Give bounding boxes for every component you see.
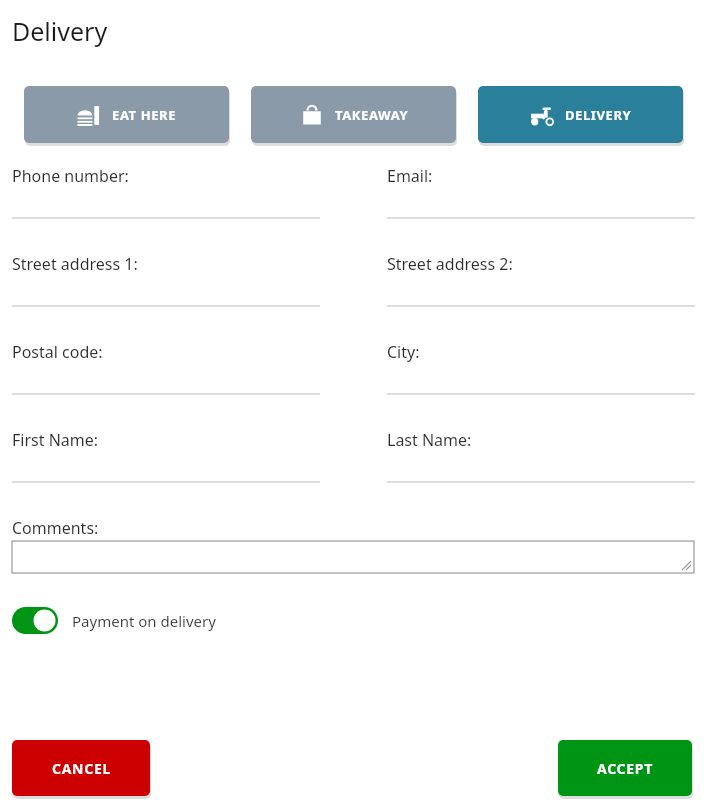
button[interactable]: CANCEL	[12, 740, 150, 796]
staticText: Comments:	[12, 517, 99, 539]
staticText: Street address 1:	[12, 253, 138, 275]
staticText: First Name:	[12, 429, 99, 451]
button[interactable]: Street address 2:	[387, 253, 695, 307]
button[interactable]: City:	[387, 341, 695, 395]
button[interactable]: DELIVERY	[478, 86, 683, 143]
staticText: DELIVERY	[565, 106, 632, 124]
button[interactable]: Payment on delivery toggle	[12, 607, 216, 634]
button[interactable]: EAT HERE	[24, 86, 229, 143]
staticText: Postal code:	[12, 341, 103, 363]
staticText: City:	[387, 341, 420, 363]
button[interactable]: First Name:	[12, 429, 320, 483]
button[interactable]: Last Name:	[387, 429, 695, 483]
button[interactable]	[12, 541, 694, 573]
staticText: Phone number:	[12, 165, 129, 187]
staticText: Street address 2:	[387, 253, 513, 275]
button[interactable]: ACCEPT	[558, 740, 692, 796]
staticText: CANCEL	[52, 759, 111, 778]
staticText: Delivery	[12, 14, 108, 48]
button[interactable]: Phone number:	[12, 165, 320, 219]
staticText: TAKEAWAY	[335, 106, 409, 124]
button[interactable]: Postal code:	[12, 341, 320, 395]
other: Payment on delivery toggle	[12, 607, 58, 634]
button[interactable]: TAKEAWAY	[251, 86, 456, 143]
staticText: ACCEPT	[597, 759, 653, 778]
staticText: Email:	[387, 165, 433, 187]
button[interactable]: Email:	[387, 165, 695, 219]
button[interactable]: Street address 1:	[12, 253, 320, 307]
staticText: EAT HERE	[112, 106, 177, 124]
staticText: Payment on delivery	[72, 611, 216, 631]
staticText: Last Name:	[387, 429, 472, 451]
